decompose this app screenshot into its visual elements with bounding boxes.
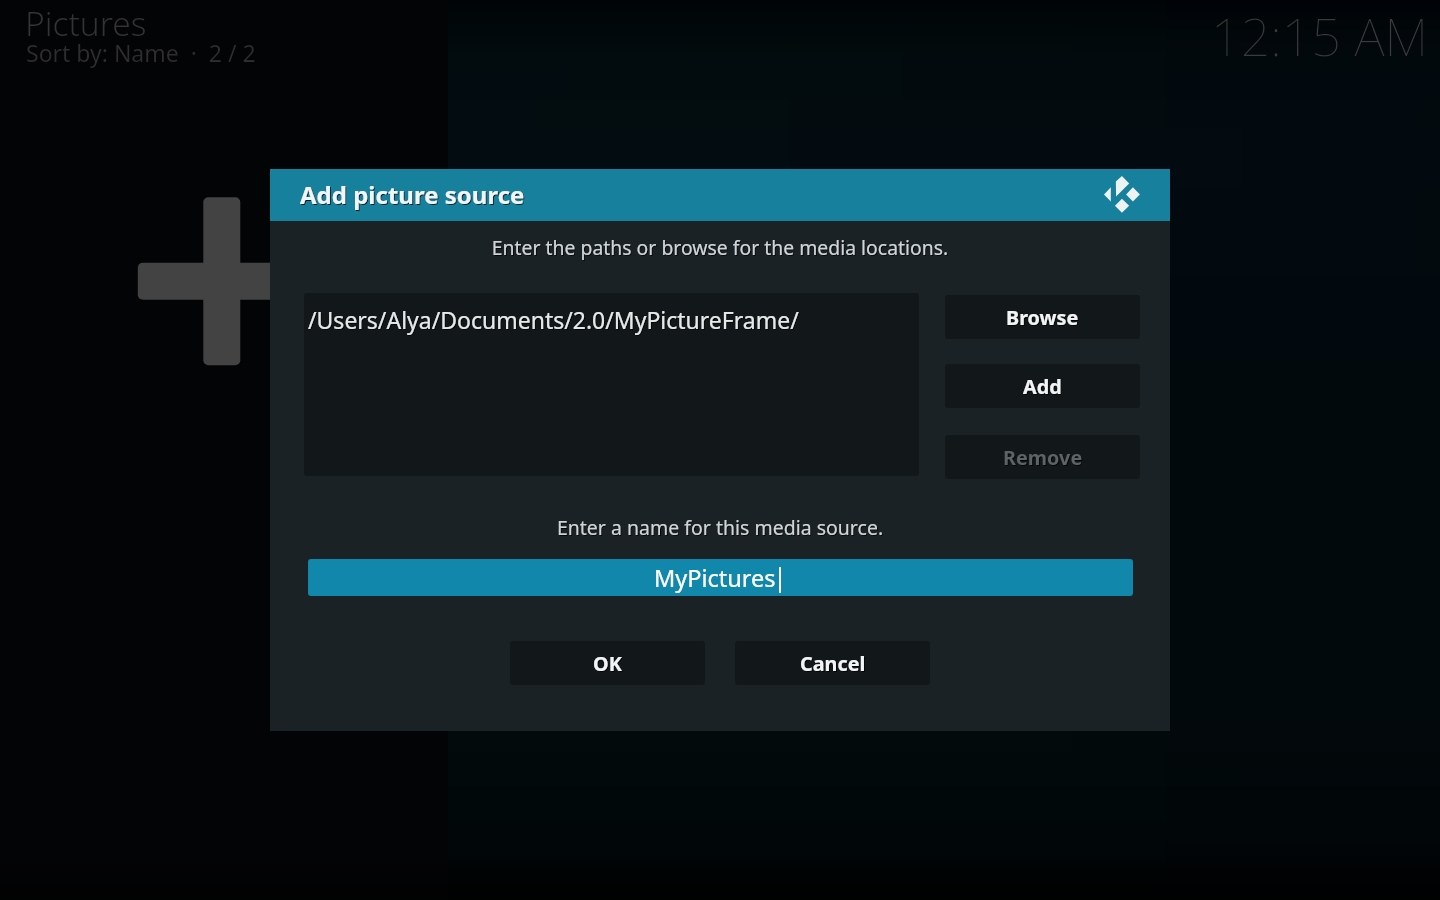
staticText: Cancel xyxy=(801,651,867,678)
staticText: 12:15 AM xyxy=(1211,0,1429,71)
staticText: Add xyxy=(1023,373,1062,400)
staticText: Remove xyxy=(1003,444,1083,471)
staticText: Enter a name for this media source. xyxy=(271,515,1171,544)
staticText: Add picture source xyxy=(301,179,526,212)
staticText: Enter the paths or browse for the media … xyxy=(271,235,1171,264)
staticText: Browse xyxy=(1006,304,1079,331)
button[interactable]: Browse xyxy=(945,295,1140,339)
button[interactable]: Cancel xyxy=(735,641,930,685)
staticText: /Users/Alya/Documents/2.0/MyPictureFrame… xyxy=(308,304,799,335)
staticText: OK xyxy=(593,650,622,677)
button[interactable]: Remove xyxy=(945,435,1140,479)
staticText: Enter the paths or browse for the media … xyxy=(270,234,1170,263)
staticText: Add xyxy=(1024,374,1063,401)
button[interactable]: MyPictures xyxy=(308,559,1133,596)
staticText: OK xyxy=(594,651,623,678)
button[interactable]: OK xyxy=(510,641,705,685)
staticText: Add picture source xyxy=(300,178,525,211)
staticText: Pictures xyxy=(25,0,147,46)
button[interactable] xyxy=(304,293,919,476)
staticText: Sort by: Name · 2 / 2 xyxy=(26,37,256,68)
staticText: /Users/Alya/Documents/2.0/MyPictureFrame… xyxy=(309,305,800,336)
staticText: Remove xyxy=(1004,445,1084,472)
staticText: Browse xyxy=(1007,305,1080,332)
other: Kodi xyxy=(1104,176,1140,213)
staticText: MyPictures xyxy=(654,562,776,594)
button[interactable]: Add xyxy=(945,364,1140,408)
staticText: Cancel xyxy=(800,650,866,677)
staticText: Enter a name for this media source. xyxy=(270,514,1170,543)
